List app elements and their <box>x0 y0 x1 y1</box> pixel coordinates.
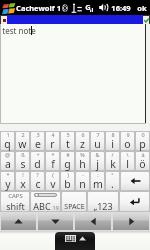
button[interactable]: Accept <box>143 16 149 24</box>
staticText: + <box>36 151 40 158</box>
button[interactable]: Down <box>38 213 73 230</box>
staticText: y <box>5 177 11 191</box>
button[interactable]: 2 <box>16 132 29 150</box>
button[interactable]: 4 <box>46 132 59 150</box>
button[interactable]: ? <box>31 172 44 190</box>
staticText: ok <box>137 3 147 13</box>
button[interactable]: Right <box>113 213 149 230</box>
staticText: 5 <box>66 131 70 138</box>
staticText: ö <box>139 157 146 171</box>
staticText: 9 <box>126 131 130 138</box>
staticText: ° <box>111 171 114 178</box>
staticText: m <box>93 177 103 191</box>
button[interactable]: test note <box>0 24 146 123</box>
staticText: d <box>34 157 41 171</box>
button[interactable]: ok <box>134 0 150 15</box>
button[interactable]: Backspace <box>121 172 149 190</box>
staticText: k <box>110 157 116 171</box>
button[interactable]: ABC <box>31 192 60 211</box>
staticText: s <box>20 157 26 171</box>
staticText: & <box>95 151 100 158</box>
staticText: 3 <box>36 131 40 138</box>
button[interactable]: * <box>1 172 14 190</box>
staticText: test note <box>2 25 36 36</box>
staticText: c <box>35 177 41 191</box>
staticText: * <box>51 151 55 158</box>
button[interactable]: & <box>91 152 104 170</box>
button[interactable]: „123 <box>88 192 118 211</box>
button[interactable]: CAPS <box>1 192 29 211</box>
staticText: ! <box>22 171 24 178</box>
staticText: SPACE <box>64 202 85 212</box>
button[interactable]: 1 <box>1 132 14 150</box>
staticText: b <box>64 177 71 191</box>
button[interactable]: * <box>46 152 59 170</box>
staticText: # <box>66 151 70 158</box>
staticText: / <box>111 151 114 158</box>
staticText: shift <box>6 200 25 212</box>
staticText: CAPS <box>8 192 23 200</box>
button[interactable]: SPACE <box>62 192 86 211</box>
staticText: q <box>4 137 11 151</box>
staticText: ? <box>36 171 39 178</box>
button[interactable]: % <box>76 152 89 170</box>
staticText: t <box>66 137 70 151</box>
staticText: 7 <box>96 131 100 138</box>
staticText: a <box>5 157 11 171</box>
button[interactable]: Enter <box>120 192 149 211</box>
button[interactable]: Start <box>0 0 15 15</box>
staticText: g <box>64 157 71 171</box>
button[interactable]: Show keyboard <box>55 232 95 250</box>
button[interactable]: ä <box>136 152 149 170</box>
staticText: ( <box>52 171 54 178</box>
staticText: . <box>111 177 114 191</box>
button[interactable]: ! <box>16 172 29 190</box>
staticText: 4 <box>51 131 55 138</box>
button[interactable]: ( <box>46 172 59 190</box>
staticText: u <box>94 137 101 151</box>
button[interactable]: ° <box>106 172 119 190</box>
button[interactable]: ß <box>16 152 29 170</box>
staticText: 1 <box>6 131 10 138</box>
staticText: 16:49 <box>111 3 131 13</box>
button[interactable]: 6 <box>76 132 89 150</box>
staticText: 8 <box>111 131 115 138</box>
staticText: G <box>85 2 91 12</box>
staticText: @ <box>5 151 10 158</box>
staticText: 0 <box>141 131 145 138</box>
staticText: * <box>6 171 10 178</box>
staticText: e <box>35 137 41 151</box>
button[interactable]: Menu <box>1 16 7 24</box>
button[interactable]: Up <box>1 213 36 230</box>
staticText: 19 <box>51 204 59 211</box>
staticText: 2 <box>21 131 25 138</box>
button[interactable]: 9 <box>121 132 134 150</box>
button[interactable]: + <box>31 152 44 170</box>
button[interactable]: 3 <box>31 132 44 150</box>
staticText: - <box>82 171 84 178</box>
button[interactable]: / <box>106 152 119 170</box>
button[interactable]: # <box>61 152 74 170</box>
button[interactable]: 8 <box>106 132 119 150</box>
staticText: r <box>50 137 55 151</box>
staticText: v <box>50 177 56 191</box>
staticText: j <box>96 157 99 171</box>
staticText: x <box>20 177 26 191</box>
button[interactable]: ) <box>61 172 74 190</box>
staticText: h <box>79 157 86 171</box>
staticText: n <box>79 177 86 191</box>
staticText: o <box>124 137 131 151</box>
button[interactable]: 7 <box>91 132 104 150</box>
staticText: z <box>80 137 85 151</box>
button[interactable]: @ <box>1 152 14 170</box>
button[interactable]: Left <box>75 213 111 230</box>
button[interactable]: : <box>91 172 104 190</box>
button[interactable]: \ <box>121 152 134 170</box>
staticText: p <box>139 137 146 151</box>
button[interactable]: 0 <box>136 132 149 150</box>
button[interactable]: 5 <box>61 132 74 150</box>
button[interactable]: - <box>76 172 89 190</box>
staticText: 6 <box>81 131 85 138</box>
staticText: w <box>18 137 27 151</box>
